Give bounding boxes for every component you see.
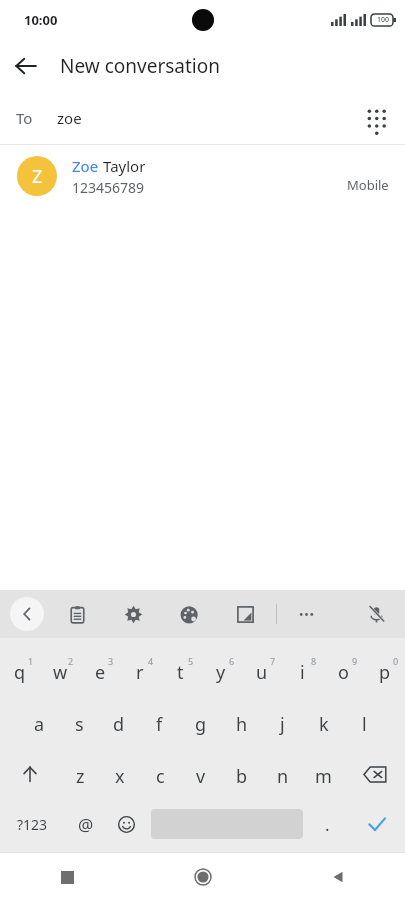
staticText: 10:00 [24, 11, 58, 29]
button[interactable]: d [99, 696, 139, 748]
button[interactable]: o [323, 644, 364, 696]
staticText: @ [78, 813, 94, 836]
staticText: 7 [270, 655, 276, 667]
staticText: c [156, 764, 165, 789]
staticText: d [113, 712, 125, 737]
button[interactable]: Back [270, 852, 405, 902]
button[interactable]: Z [0, 145, 405, 207]
staticText: o [338, 660, 349, 685]
button[interactable]: p [364, 644, 405, 696]
button[interactable]: Settings [118, 599, 148, 629]
button[interactable]: Recents [0, 852, 135, 902]
button[interactable]: h [221, 696, 262, 748]
button[interactable]: y [200, 644, 241, 696]
staticText: j [280, 712, 285, 737]
staticText: p [379, 660, 391, 685]
staticText: 4 [148, 655, 154, 667]
button[interactable]: m [303, 748, 344, 800]
button[interactable]: Shift [0, 748, 60, 800]
staticText: m [315, 764, 332, 789]
button[interactable]: s [59, 696, 99, 748]
button[interactable]: r [120, 644, 160, 696]
staticText: n [277, 764, 289, 789]
button[interactable]: . [307, 800, 348, 848]
button[interactable]: Home [135, 852, 270, 902]
button[interactable]: c [140, 748, 180, 800]
staticText: a [34, 712, 45, 737]
button[interactable]: q [0, 644, 40, 696]
button[interactable]: b [221, 748, 262, 800]
staticText: 1 [28, 655, 34, 667]
staticText: e [95, 660, 106, 685]
button[interactable]: z [60, 748, 100, 800]
button[interactable]: Clipboard [62, 599, 92, 629]
staticText: w [53, 660, 68, 685]
button[interactable]: l [344, 696, 385, 748]
button[interactable]: e [80, 644, 120, 696]
staticText: 5 [188, 655, 194, 667]
staticText: v [196, 764, 206, 789]
button[interactable]: Back [0, 40, 52, 92]
button[interactable]: j [262, 696, 303, 748]
button[interactable]: Dialpad [349, 92, 401, 144]
button[interactable]: Resize keyboard [230, 599, 260, 629]
staticText: u [256, 660, 268, 685]
button[interactable]: i [282, 644, 323, 696]
staticText: New conversation [60, 53, 220, 79]
staticText: ?123 [17, 815, 48, 834]
staticText: 3 [108, 655, 114, 667]
button[interactable]: a [19, 696, 59, 748]
staticText: 2 [68, 655, 74, 667]
staticText: To [16, 108, 33, 128]
staticText: f [156, 712, 163, 737]
button[interactable]: Voice input off [361, 599, 391, 629]
staticText: Taylor [103, 156, 146, 176]
staticText: Zoe [72, 156, 103, 176]
button[interactable]: x [100, 748, 140, 800]
staticText: t [177, 660, 184, 685]
button[interactable]: v [180, 748, 221, 800]
button[interactable]: k [303, 696, 344, 748]
staticText: 6 [229, 655, 235, 667]
staticText: l [362, 712, 367, 737]
button[interactable]: g [180, 696, 221, 748]
staticText: zoe [57, 108, 82, 128]
button[interactable]: n [262, 748, 303, 800]
button[interactable]: Expand toolbar [10, 597, 44, 631]
button[interactable]: Theme [174, 599, 204, 629]
staticText: 9 [352, 655, 358, 667]
staticText: 100 [377, 15, 390, 25]
staticText: i [300, 660, 305, 685]
staticText: Mobile [347, 176, 389, 194]
staticText: s [75, 712, 84, 737]
staticText: Z [32, 164, 43, 189]
staticText: z [76, 764, 85, 789]
staticText: y [216, 660, 226, 685]
button[interactable]: Delete [344, 748, 405, 800]
button[interactable]: ?123 [0, 800, 65, 848]
button[interactable]: @ [65, 800, 106, 848]
button[interactable]: u [241, 644, 282, 696]
staticText: b [236, 764, 248, 789]
button[interactable]: f [139, 696, 180, 748]
staticText: k [319, 712, 329, 737]
button[interactable]: t [160, 644, 200, 696]
staticText: 0 [393, 655, 399, 667]
button[interactable]: More options [291, 599, 321, 629]
staticText: 123456789 [72, 178, 145, 197]
button[interactable]: Emoji [106, 800, 147, 848]
staticText: q [14, 660, 26, 685]
staticText: x [115, 764, 125, 789]
button[interactable]: w [40, 644, 80, 696]
staticText: . [325, 813, 330, 836]
staticText: r [136, 660, 144, 685]
staticText: g [195, 712, 207, 737]
button[interactable]: Done [348, 800, 405, 848]
staticText: 8 [311, 655, 317, 667]
staticText: h [236, 712, 248, 737]
